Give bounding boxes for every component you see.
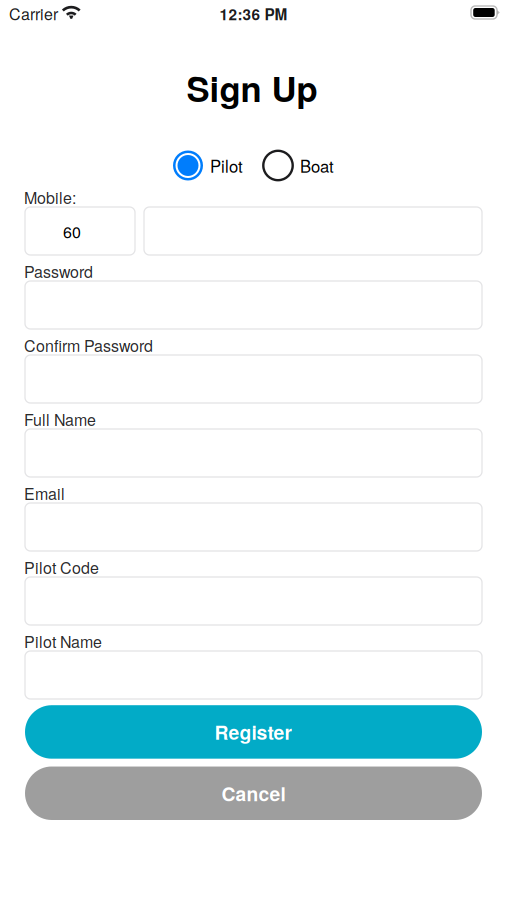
button[interactable]: Register (25, 705, 482, 759)
staticText: Pilot Name (24, 630, 102, 653)
button[interactable]: Pilot (173, 150, 243, 180)
staticText: Pilot Code (24, 556, 99, 579)
staticText: Confirm Password (24, 334, 153, 357)
staticText: Email (24, 482, 65, 505)
staticText: Boat (300, 154, 334, 177)
staticText: Carrier (9, 2, 58, 25)
staticText: Sign Up (186, 63, 317, 113)
staticText: Cancel (221, 779, 285, 807)
staticText: Password (24, 260, 93, 283)
button[interactable]: Boat (263, 150, 334, 180)
staticText: 12:36 PM (219, 3, 287, 25)
staticText: Full Name (24, 408, 96, 431)
staticText: Pilot (210, 154, 243, 177)
button[interactable]: Cancel (25, 766, 482, 820)
staticText: Mobile: (24, 186, 76, 209)
staticText: 60 (63, 220, 81, 243)
staticText: Register (214, 718, 292, 746)
